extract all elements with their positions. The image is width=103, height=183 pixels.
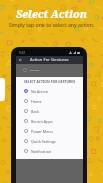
button[interactable]: Notification (16, 146, 83, 156)
button[interactable]: Quick Settings (16, 136, 83, 146)
staticText: Quick Settings (31, 139, 56, 144)
staticText: Select Action (0, 7, 103, 21)
staticText: Power Menu (31, 129, 53, 134)
staticText: Home (31, 99, 42, 104)
staticText: Action For Gestures (30, 57, 69, 63)
button[interactable]: No Action (16, 86, 83, 96)
staticText: Back (31, 109, 40, 114)
staticText: Notification (31, 149, 52, 154)
staticText: Recent Apps (31, 119, 53, 124)
button[interactable]: Power Menu (16, 126, 83, 136)
button[interactable]: Back (16, 106, 83, 116)
button[interactable]: Home (16, 96, 83, 106)
button[interactable]: Back (16, 56, 24, 64)
button[interactable]: Recent Apps (16, 116, 83, 126)
staticText: 9:41 (19, 51, 26, 55)
staticText: Simply tap one to select any action. (0, 21, 103, 28)
staticText: No Action (31, 89, 48, 94)
staticText: SELECT ACTION FOR GESTURES (24, 79, 76, 84)
